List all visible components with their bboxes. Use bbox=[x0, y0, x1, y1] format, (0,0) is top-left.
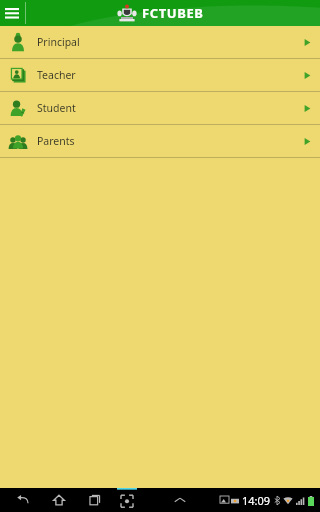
button[interactable]: Parents bbox=[0, 125, 320, 157]
button[interactable]: Student bbox=[0, 92, 320, 124]
staticText: 14:09 bbox=[242, 493, 271, 508]
button[interactable]: Screenshot bbox=[114, 488, 140, 512]
button[interactable]: Open navigation menu bbox=[0, 0, 24, 26]
button[interactable]: Back bbox=[10, 488, 36, 512]
button[interactable]: Recent apps bbox=[82, 488, 108, 512]
staticText: FCTUBEB bbox=[142, 4, 204, 22]
staticText: Principal bbox=[37, 35, 80, 49]
staticText: Student bbox=[37, 101, 76, 115]
staticText: Parents bbox=[37, 134, 75, 148]
button[interactable]: Show notifications bbox=[167, 488, 193, 512]
button[interactable]: Teacher bbox=[0, 59, 320, 91]
button[interactable]: Principal bbox=[0, 26, 320, 58]
staticText: Teacher bbox=[37, 68, 76, 82]
button[interactable]: Home bbox=[46, 488, 72, 512]
